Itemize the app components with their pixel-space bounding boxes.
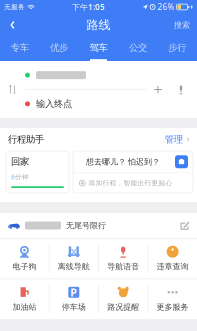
button[interactable]: 回家	[6, 151, 69, 193]
staticText: 电子狗	[12, 262, 36, 271]
staticText: 优步	[50, 42, 68, 53]
staticText: 更多服务	[157, 302, 189, 312]
staticText: 行程助手	[8, 134, 44, 145]
staticText: 路况提醒	[107, 302, 139, 312]
staticText: 离线导航	[58, 262, 90, 271]
button[interactable]: 导航语音	[99, 239, 148, 279]
button[interactable]: 违章查询	[148, 239, 197, 279]
staticText: 添加行程，智能出行更贴心	[88, 179, 172, 187]
staticText: P	[70, 285, 77, 299]
button[interactable]: 路况提醒	[99, 279, 148, 319]
staticText: 回家	[11, 156, 29, 167]
button[interactable]: Voice search	[169, 74, 193, 104]
staticText: 路线	[86, 18, 110, 32]
staticText: 搜索	[174, 20, 190, 30]
staticText: 专车	[11, 42, 29, 53]
button[interactable]: 驾车	[79, 36, 118, 61]
button[interactable]: Add waypoint	[147, 74, 169, 104]
staticText: 导航语音	[107, 262, 139, 271]
button[interactable]: 优步	[39, 36, 79, 61]
staticText: 步行	[168, 42, 186, 53]
button[interactable]: 管理	[165, 129, 190, 150]
staticText: 下午1:05	[72, 2, 105, 12]
button[interactable]: Back	[0, 14, 24, 36]
button[interactable]: 步行	[158, 36, 197, 61]
button[interactable]: P	[49, 279, 98, 319]
staticText: 输入终点	[36, 98, 72, 110]
staticText: 无尾号限行	[66, 221, 106, 230]
staticText: 管理	[165, 134, 183, 145]
button[interactable]: 无尾号限行	[0, 213, 197, 238]
staticText: 公交	[129, 42, 147, 53]
button[interactable]: 专车	[0, 36, 39, 61]
button[interactable]: 添加行程，智能出行更贴心	[73, 173, 193, 193]
button[interactable]: 加油站	[0, 279, 49, 319]
button[interactable]: 电子狗	[0, 239, 49, 279]
button[interactable]: 公交	[118, 36, 158, 61]
staticText: 无服务	[4, 3, 25, 11]
staticText: 6分钟	[11, 172, 29, 181]
staticText: 停车场	[62, 302, 86, 312]
button[interactable]: 搜索	[167, 14, 197, 36]
staticText: 驾车	[89, 42, 107, 53]
staticText: 加油站	[12, 302, 36, 312]
button[interactable]: 离线导航	[49, 239, 98, 279]
staticText: 26%	[158, 2, 175, 12]
staticText: 想去哪儿？ 怕迟到？	[86, 157, 160, 167]
button[interactable]: 想去哪儿？ 怕迟到？	[73, 151, 193, 172]
staticText: 违章查询	[157, 262, 189, 271]
button[interactable]: 更多服务	[148, 279, 197, 319]
